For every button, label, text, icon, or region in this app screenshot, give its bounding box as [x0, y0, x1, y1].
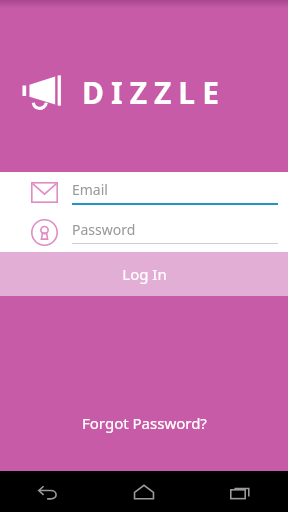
other: Dizzle megaphone logo: [20, 71, 64, 113]
button[interactable]: Home: [96, 471, 192, 512]
staticText: DIZZLE: [82, 72, 226, 113]
button[interactable]: Back: [0, 471, 96, 512]
button[interactable]: Recent apps: [192, 471, 288, 512]
button[interactable]: Password: [0, 212, 288, 252]
button[interactable]: Log In: [0, 252, 288, 296]
staticText: Forgot Password?: [82, 413, 207, 433]
button[interactable]: Forgot Password?: [72, 409, 217, 437]
button[interactable]: Email: [0, 172, 288, 212]
staticText: Log In: [122, 264, 167, 284]
staticText: Email: [72, 180, 108, 199]
staticText: Password: [72, 220, 136, 239]
